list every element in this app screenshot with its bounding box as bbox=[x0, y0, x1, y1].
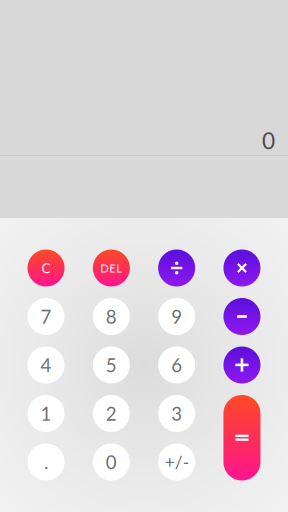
staticText: 1 bbox=[40, 402, 51, 425]
button[interactable]: Add bbox=[223, 346, 260, 383]
button[interactable]: Subtract bbox=[223, 298, 260, 335]
staticText: C bbox=[41, 260, 50, 276]
button[interactable]: 7 bbox=[27, 298, 64, 335]
button[interactable]: 1 bbox=[27, 395, 64, 432]
button[interactable]: Equals bbox=[223, 395, 260, 480]
button[interactable]: 0 bbox=[93, 443, 130, 480]
staticText: 0 bbox=[106, 451, 117, 473]
button[interactable]: 6 bbox=[158, 346, 195, 383]
staticText: 8 bbox=[106, 305, 117, 328]
button[interactable]: Divide bbox=[158, 249, 195, 286]
button[interactable]: 5 bbox=[93, 346, 130, 383]
staticText: 2 bbox=[106, 402, 117, 425]
button[interactable]: 9 bbox=[158, 298, 195, 335]
button[interactable]: 8 bbox=[93, 298, 130, 335]
button[interactable]: DEL bbox=[93, 249, 130, 286]
staticText: 5 bbox=[106, 354, 117, 376]
button[interactable]: . bbox=[27, 443, 64, 480]
staticText: DEL bbox=[100, 261, 122, 275]
staticText: 0 bbox=[262, 127, 275, 154]
button[interactable]: +/- bbox=[158, 443, 195, 480]
staticText: 3 bbox=[171, 402, 182, 425]
button[interactable]: Multiply bbox=[223, 249, 260, 286]
button[interactable]: C bbox=[27, 249, 64, 286]
staticText: 9 bbox=[171, 305, 182, 328]
staticText: 6 bbox=[171, 354, 182, 376]
staticText: . bbox=[44, 451, 48, 473]
button[interactable]: 3 bbox=[158, 395, 195, 432]
button[interactable]: 2 bbox=[93, 395, 130, 432]
staticText: 7 bbox=[40, 305, 51, 328]
staticText: 4 bbox=[40, 354, 51, 376]
button[interactable]: 4 bbox=[27, 346, 64, 383]
staticText: +/- bbox=[165, 452, 189, 472]
